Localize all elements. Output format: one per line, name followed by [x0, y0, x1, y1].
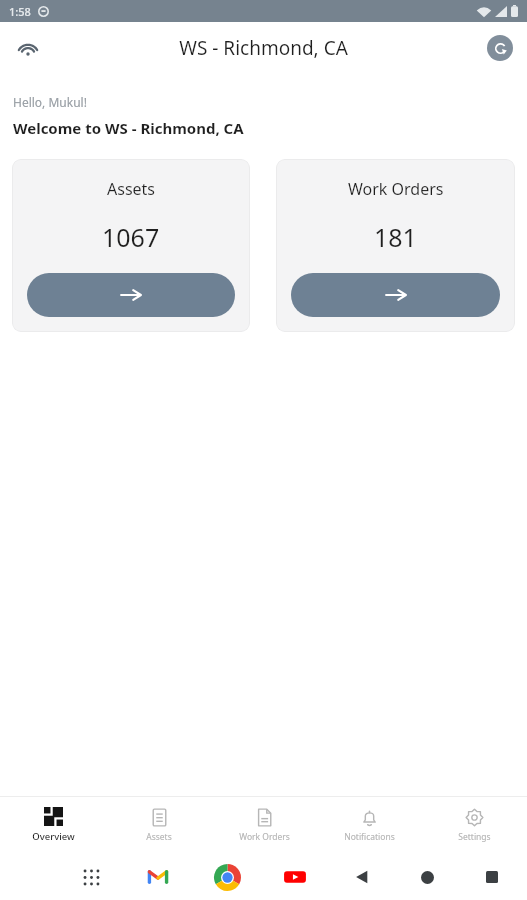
staticText: 181: [374, 220, 417, 254]
button[interactable]: Open Assets: [27, 273, 235, 317]
button[interactable]: Recents: [479, 864, 505, 890]
staticText: Settings: [458, 831, 491, 843]
button[interactable]: YouTube: [280, 862, 310, 892]
staticText: Welcome to WS - Richmond, CA: [13, 118, 244, 138]
staticText: Assets: [146, 831, 172, 843]
staticText: WS - Richmond, CA: [179, 35, 348, 61]
button[interactable]: Assets: [106, 797, 212, 853]
staticText: 1067: [102, 220, 160, 254]
button[interactable]: Gmail: [143, 862, 173, 892]
staticText: 1:58: [9, 4, 31, 19]
staticText: Assets: [107, 178, 156, 200]
staticText: Overview: [32, 830, 75, 843]
button[interactable]: Refresh: [487, 35, 513, 61]
button[interactable]: Home: [414, 864, 440, 890]
staticText: Hello, Mukul!: [13, 94, 87, 110]
button[interactable]: Chrome: [212, 862, 242, 892]
button[interactable]: Work Orders: [276, 159, 515, 332]
staticText: Work Orders: [348, 178, 444, 200]
button[interactable]: Overview: [0, 797, 106, 853]
button[interactable]: Open Work Orders: [291, 273, 500, 317]
button[interactable]: Work Orders: [212, 797, 317, 853]
staticText: Notifications: [344, 831, 395, 843]
button[interactable]: Connection status: [8, 28, 48, 68]
staticText: Work Orders: [239, 831, 290, 843]
button[interactable]: Settings: [422, 797, 527, 853]
button[interactable]: Back: [349, 864, 375, 890]
button[interactable]: All apps: [78, 864, 104, 890]
button[interactable]: Assets: [12, 159, 250, 332]
button[interactable]: Notifications: [317, 797, 422, 853]
